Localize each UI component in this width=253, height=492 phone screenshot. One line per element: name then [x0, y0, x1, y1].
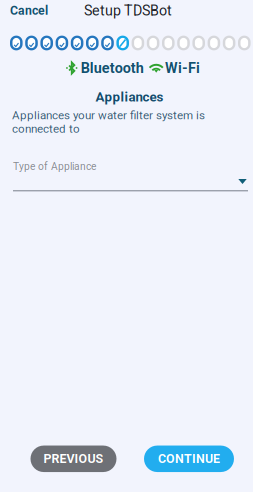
staticText: Appliances your water filter system is c… — [12, 108, 205, 136]
staticText: Appliances — [95, 89, 163, 105]
staticText: Cancel — [10, 3, 48, 18]
staticText: CONTINUE — [158, 451, 220, 466]
staticText: Setup TDSBot — [84, 2, 172, 19]
button[interactable]: Cancel — [10, 0, 66, 21]
staticText: Wi-Fi — [165, 60, 200, 76]
staticText: Type of Appliance — [13, 160, 96, 172]
button[interactable]: CONTINUE — [144, 446, 234, 472]
staticText: PREVIOUS — [43, 451, 103, 466]
staticText: Bluetooth — [81, 60, 144, 76]
button[interactable]: PREVIOUS — [30, 446, 116, 472]
